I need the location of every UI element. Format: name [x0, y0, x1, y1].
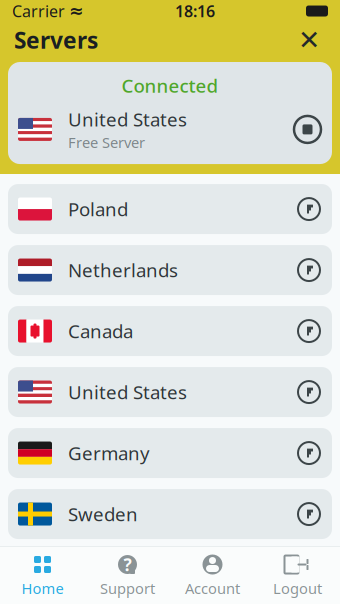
staticText: ? — [123, 553, 131, 576]
staticText: United States — [68, 380, 187, 404]
staticText: Carrier — [12, 0, 65, 22]
button[interactable]: Poland — [8, 184, 332, 234]
staticText: Account — [185, 578, 240, 598]
staticText: Logout — [273, 578, 322, 598]
staticText: Home — [21, 578, 63, 598]
staticText: Servers — [14, 25, 98, 55]
button[interactable]: Home — [0, 546, 85, 604]
button[interactable]: Sweden — [8, 489, 332, 539]
staticText: 18:16 — [175, 0, 215, 22]
staticText: Free Server — [68, 133, 145, 152]
staticText: Connected — [121, 73, 218, 98]
staticText: ≈ — [69, 1, 84, 21]
staticText: Germany — [68, 441, 150, 465]
staticText: Poland — [68, 197, 128, 221]
staticText: Support — [100, 578, 155, 598]
staticText: Netherlands — [68, 258, 178, 282]
button[interactable]: Germany — [8, 428, 332, 478]
staticText: United States — [68, 107, 187, 132]
button[interactable]: Netherlands — [8, 245, 332, 295]
staticText: Poland — [68, 563, 128, 587]
staticText: Sweden — [68, 502, 138, 526]
button[interactable]: Account — [170, 546, 255, 604]
button[interactable]: Disconnect — [292, 114, 332, 145]
staticText: ✕ — [298, 25, 320, 55]
button[interactable]: Canada — [8, 306, 332, 356]
button[interactable]: United States — [8, 367, 332, 417]
button[interactable]: Logout — [255, 546, 340, 604]
staticText: Canada — [68, 319, 133, 343]
button[interactable]: Poland — [8, 550, 332, 600]
button[interactable]: ? — [85, 546, 170, 604]
button[interactable]: Close — [292, 23, 326, 57]
